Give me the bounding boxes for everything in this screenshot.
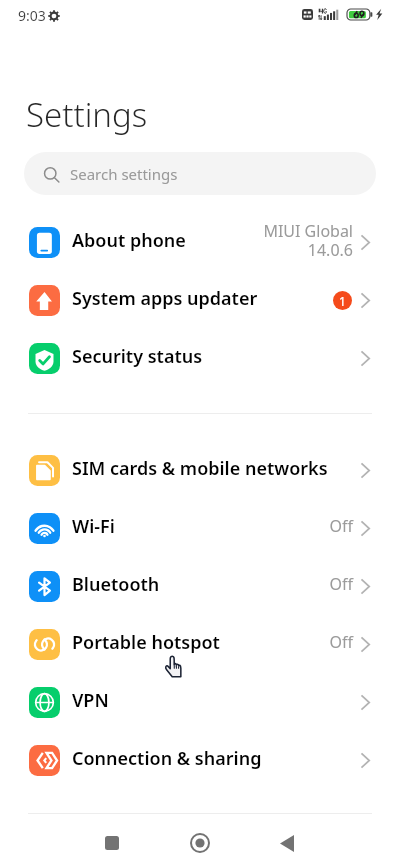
staticText: 1: [339, 293, 346, 309]
staticText: About phone: [72, 228, 263, 253]
button[interactable]: VPN: [0, 671, 400, 729]
button[interactable]: Home: [176, 819, 224, 867]
button[interactable]: SIM cards & mobile networks: [0, 439, 400, 497]
staticText: VPN: [72, 688, 361, 713]
button[interactable]: Recents: [88, 819, 136, 867]
staticText: Bluetooth: [72, 572, 329, 597]
button[interactable]: Bluetooth: [0, 555, 400, 613]
staticText: Off: [329, 573, 353, 595]
staticText: Off: [329, 515, 353, 537]
staticText: System apps updater: [72, 286, 333, 311]
staticText: Off: [329, 631, 353, 653]
button[interactable]: Security status: [0, 327, 400, 385]
staticText: Wi-Fi: [72, 514, 329, 539]
staticText: MIUI Global 14.0.6: [263, 220, 353, 261]
button[interactable]: Back: [263, 819, 311, 867]
staticText: Search settings: [70, 164, 178, 184]
staticText: Security status: [72, 344, 361, 369]
staticText: Settings: [26, 92, 148, 137]
staticText: Connection & sharing: [72, 746, 361, 771]
staticText: 9:03: [18, 6, 46, 25]
button[interactable]: Wi-Fi: [0, 497, 400, 555]
button[interactable]: Portable hotspot: [0, 613, 400, 671]
button[interactable]: System apps updater: [0, 269, 400, 327]
staticText: SIM cards & mobile networks: [72, 456, 361, 481]
button[interactable]: Search settings: [24, 152, 376, 195]
button[interactable]: About phone: [0, 211, 400, 269]
button[interactable]: Connection & sharing: [0, 729, 400, 787]
staticText: Portable hotspot: [72, 630, 329, 655]
